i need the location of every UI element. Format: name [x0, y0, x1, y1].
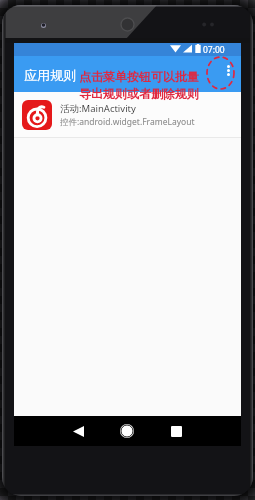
staticText: 07:00 — [203, 44, 225, 56]
staticText: 控件:android.widget.FrameLayout — [60, 116, 195, 128]
button[interactable]: Back — [49, 416, 107, 446]
staticText: 应用规则 — [24, 67, 76, 83]
button[interactable]: More options — [215, 56, 241, 92]
staticText: 点击菜单按钮可以批量 — [79, 69, 199, 84]
button[interactable]: 活动:MainActivity — [14, 92, 241, 137]
staticText: 活动:MainActivity — [60, 102, 136, 115]
button[interactable]: Home — [98, 416, 156, 446]
staticText: 导出规则或者删除规则 — [79, 86, 199, 101]
button[interactable]: Recents — [147, 416, 205, 446]
